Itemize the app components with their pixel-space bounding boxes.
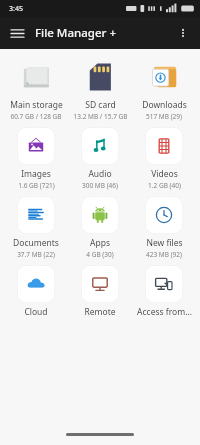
button[interactable]: More options xyxy=(170,20,196,46)
staticText: 517 MB (29) xyxy=(146,112,182,121)
button[interactable]: Videos xyxy=(132,124,196,193)
staticText: Downloads xyxy=(142,99,187,111)
button[interactable]: SD card xyxy=(68,55,132,124)
staticText: 3:45 xyxy=(9,4,23,14)
button[interactable]: Main storage xyxy=(4,55,68,124)
staticText: 1.6 GB (721) xyxy=(18,181,55,190)
button[interactable]: Remote xyxy=(68,262,132,321)
staticText: 4 GB (30) xyxy=(86,250,114,259)
staticText: Remote xyxy=(84,306,116,318)
staticText: Apps xyxy=(90,237,110,249)
button[interactable]: Apps xyxy=(68,193,132,262)
staticText: New files xyxy=(146,237,183,249)
staticText: Main storage xyxy=(10,99,63,111)
staticText: Cloud xyxy=(24,306,48,318)
button[interactable]: New files xyxy=(132,193,196,262)
staticText: 300 MB (46) xyxy=(82,181,118,190)
staticText: File Manager + xyxy=(35,25,116,41)
staticText: Images xyxy=(21,168,51,180)
button[interactable]: Access from... xyxy=(132,262,196,321)
staticText: 60.7 GB / 128 GB xyxy=(10,112,62,121)
staticText: 423 MB (92) xyxy=(146,250,182,259)
button[interactable]: Open navigation drawer xyxy=(4,20,30,46)
button[interactable]: Audio xyxy=(68,124,132,193)
staticText: 13.2 MB / 15.7 GB xyxy=(73,112,128,121)
staticText: 37.7 MB (22) xyxy=(17,250,55,259)
button[interactable]: Downloads xyxy=(132,55,196,124)
button[interactable]: Documents xyxy=(4,193,68,262)
button[interactable]: Cloud xyxy=(4,262,68,321)
staticText: SD card xyxy=(85,99,116,111)
button[interactable]: Images xyxy=(4,124,68,193)
staticText: 1.2 GB (40) xyxy=(148,181,181,190)
staticText: Videos xyxy=(151,168,178,180)
staticText: Documents xyxy=(13,237,59,249)
staticText: Audio xyxy=(88,168,112,180)
staticText: Access from... xyxy=(137,306,192,318)
